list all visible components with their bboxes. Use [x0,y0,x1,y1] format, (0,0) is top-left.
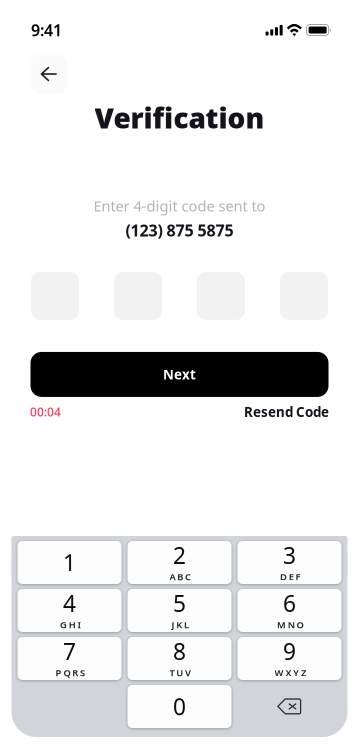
button[interactable]: 0 [127,685,231,728]
staticText: 8 [173,636,186,666]
button[interactable]: Next [30,352,328,397]
button[interactable]: Back [30,54,68,94]
staticText: JKL [171,618,189,631]
staticText: 1 [63,547,76,577]
staticText: 4 [63,588,76,618]
button[interactable]: 8 [127,637,231,680]
staticText: ABC [169,570,191,583]
staticText: 0 [173,691,186,721]
staticText: Verification [94,99,264,136]
staticText: 00:04 [30,404,61,420]
staticText: GHI [60,618,81,631]
button[interactable]: 6 [237,589,341,632]
staticText: TUV [169,666,191,679]
button[interactable]: 2 [127,541,231,584]
button[interactable]: Delete [237,685,341,728]
staticText: PQRS [56,666,85,679]
staticText: 9 [283,636,296,666]
button[interactable]: 4 [17,589,121,632]
button[interactable]: 7 [17,637,121,680]
button[interactable]: Resend Code [244,403,329,421]
staticText: WXYZ [275,666,306,679]
staticText: 3 [283,540,296,570]
staticText: Enter 4-digit code sent to [93,196,265,216]
staticText: DEF [280,570,301,583]
staticText: MNO [277,618,304,631]
button[interactable]: 5 [127,589,231,632]
staticText: 5 [173,588,186,618]
button[interactable]: 3 [237,541,341,584]
button[interactable]: 1 [17,541,121,584]
staticText: 2 [173,540,186,570]
button[interactable]: 9 [237,637,341,680]
staticText: 7 [63,636,76,666]
staticText: Next [163,366,196,383]
staticText: Resend Code [244,403,329,421]
staticText: 6 [283,588,296,618]
staticText: 9:41 [31,19,62,41]
staticText: (123) 875 5875 [125,220,233,241]
